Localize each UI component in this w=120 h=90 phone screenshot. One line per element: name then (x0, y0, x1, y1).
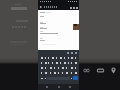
button[interactable]: Key (47, 60, 50, 65)
button[interactable]: Key (61, 70, 64, 75)
button[interactable]: Link (81, 65, 91, 75)
button[interactable]: Key (74, 70, 77, 75)
button[interactable]: Key (70, 60, 73, 65)
button[interactable]: Key (49, 65, 52, 70)
button[interactable]: Key (74, 60, 77, 65)
button[interactable]: Key (40, 70, 43, 75)
button[interactable]: Comma (44, 76, 47, 80)
button[interactable]: Key (40, 60, 43, 65)
button[interactable]: Key (44, 65, 47, 70)
button[interactable]: Key (55, 55, 58, 60)
button[interactable]: Key (40, 65, 43, 70)
button[interactable]: Key (70, 70, 73, 75)
button[interactable]: Key (44, 55, 47, 60)
button[interactable]: Key (44, 60, 47, 65)
button[interactable]: Key (51, 60, 54, 65)
button[interactable]: Action (69, 6, 72, 9)
button[interactable]: Key (74, 65, 77, 70)
button[interactable]: Key (63, 60, 66, 65)
button[interactable]: Key (70, 65, 73, 70)
button[interactable]: Action (72, 6, 75, 9)
button[interactable]: Key (59, 60, 62, 65)
button[interactable]: Key (40, 55, 43, 60)
button[interactable]: Key (49, 70, 52, 75)
button[interactable]: Key (70, 55, 73, 60)
button[interactable]: Nav (68, 85, 72, 89)
button[interactable]: Back (39, 5, 43, 9)
button[interactable]: Key (61, 65, 64, 70)
button[interactable]: Key (57, 70, 60, 75)
button[interactable]: Location (108, 65, 118, 75)
button[interactable]: Key (57, 65, 60, 70)
button[interactable]: Key (74, 55, 77, 60)
button[interactable]: Key (63, 55, 66, 60)
button[interactable]: Tool (70, 51, 73, 54)
button[interactable]: Key (53, 70, 56, 75)
button[interactable]: Tool (66, 51, 69, 54)
button[interactable]: Key (55, 60, 58, 65)
button[interactable]: Card (95, 65, 105, 75)
button[interactable]: Key (67, 60, 70, 65)
button[interactable]: Key (51, 55, 54, 60)
button[interactable]: Nav (57, 85, 61, 89)
button[interactable]: Key (67, 55, 70, 60)
button[interactable]: Symbols (39, 76, 44, 80)
button[interactable]: Photo (73, 24, 79, 30)
button[interactable]: Key (53, 65, 56, 70)
button[interactable]: Key (59, 55, 62, 60)
button[interactable]: Key (65, 65, 68, 70)
button[interactable]: Tool (74, 51, 77, 54)
button[interactable]: Key (44, 70, 47, 75)
button[interactable]: Key (65, 70, 68, 75)
button[interactable]: Period (70, 76, 73, 80)
button[interactable]: Key (47, 55, 50, 60)
button[interactable]: Nav (45, 85, 49, 89)
button[interactable]: Action (75, 6, 78, 9)
button[interactable]: Enter (73, 76, 78, 80)
